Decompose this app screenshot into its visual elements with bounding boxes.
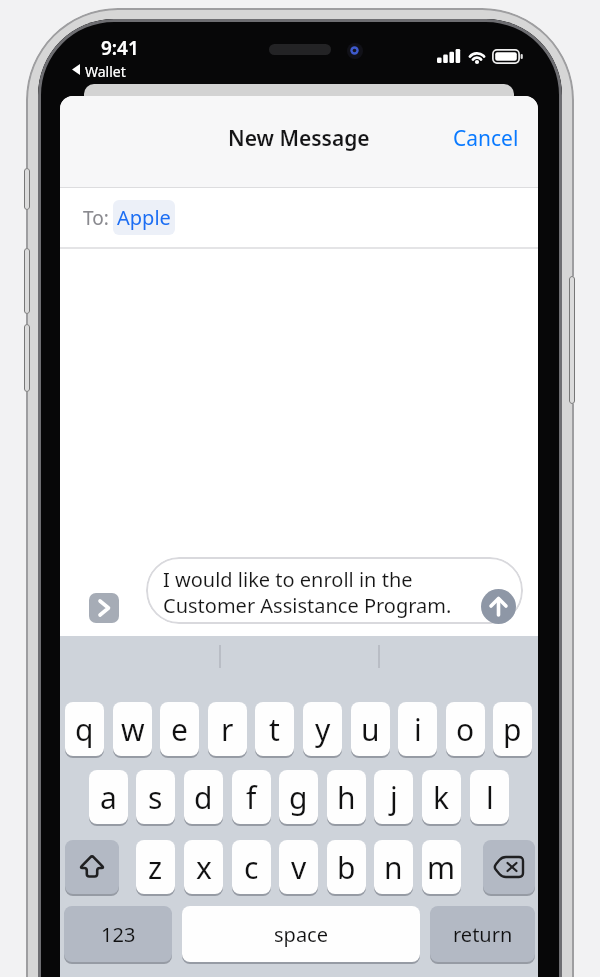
staticText: w [121, 709, 145, 750]
button[interactable]: r [208, 702, 247, 756]
button[interactable] [89, 593, 119, 623]
staticText: q [75, 709, 94, 750]
staticText: v [291, 847, 307, 888]
staticText: s [148, 777, 163, 818]
staticText: e [171, 709, 188, 750]
staticText: To: [83, 205, 109, 231]
button[interactable]: 123 [64, 906, 172, 962]
button[interactable]: u [351, 702, 390, 756]
button[interactable]: a [89, 770, 128, 824]
button[interactable]: t [255, 702, 294, 756]
staticText: 9:41 [101, 35, 139, 61]
staticText: t [269, 709, 280, 750]
staticText: I would like to enroll in the Customer A… [163, 566, 452, 619]
button[interactable]: x [184, 840, 223, 894]
staticText: Cancel [453, 124, 519, 153]
staticText: New Message [228, 124, 370, 153]
staticText: b [337, 847, 356, 888]
staticText: f [246, 777, 257, 818]
staticText: return [453, 921, 513, 948]
staticText: m [427, 847, 456, 888]
staticText: Wallet [85, 62, 126, 81]
button[interactable] [65, 840, 119, 894]
button[interactable]: v [279, 840, 318, 894]
staticText: j [390, 777, 398, 818]
button[interactable]: b [327, 840, 366, 894]
staticText: p [503, 709, 522, 750]
button[interactable]: Apple [113, 200, 175, 235]
staticText: n [384, 847, 403, 888]
button[interactable]: z [136, 840, 175, 894]
staticText: r [221, 709, 234, 750]
button[interactable]: q [65, 702, 104, 756]
button[interactable]: Cancel [453, 96, 519, 181]
button[interactable]: c [232, 840, 271, 894]
button[interactable]: h [327, 770, 366, 824]
button[interactable] [481, 589, 516, 624]
button[interactable]: y [303, 702, 342, 756]
button[interactable]: d [184, 770, 223, 824]
staticText: space [274, 921, 328, 948]
button[interactable]: k [422, 770, 461, 824]
staticText: c [244, 847, 259, 888]
button[interactable]: j [374, 770, 413, 824]
staticText: 123 [101, 921, 136, 948]
button[interactable]: n [374, 840, 413, 894]
staticText: x [196, 847, 212, 888]
staticText: d [194, 777, 213, 818]
staticText: g [289, 777, 308, 818]
button[interactable]: p [493, 702, 532, 756]
button[interactable]: w [113, 702, 152, 756]
staticText: z [148, 847, 163, 888]
staticText: Apple [117, 204, 171, 231]
staticText: h [337, 777, 356, 818]
button[interactable]: o [446, 702, 485, 756]
staticText: k [433, 777, 450, 818]
staticText: a [100, 777, 117, 818]
button[interactable]: m [422, 840, 461, 894]
staticText: o [456, 709, 475, 750]
button[interactable]: g [279, 770, 318, 824]
staticText: u [361, 709, 380, 750]
button[interactable]: return [430, 906, 535, 962]
button[interactable]: s [136, 770, 175, 824]
button[interactable]: e [160, 702, 199, 756]
button[interactable]: l [470, 770, 509, 824]
staticText: i [414, 709, 422, 750]
button[interactable]: space [182, 906, 420, 962]
button[interactable]: f [232, 770, 271, 824]
button[interactable] [483, 840, 535, 894]
staticText: y [315, 709, 331, 750]
button[interactable]: i [398, 702, 437, 756]
staticText: l [486, 777, 494, 818]
